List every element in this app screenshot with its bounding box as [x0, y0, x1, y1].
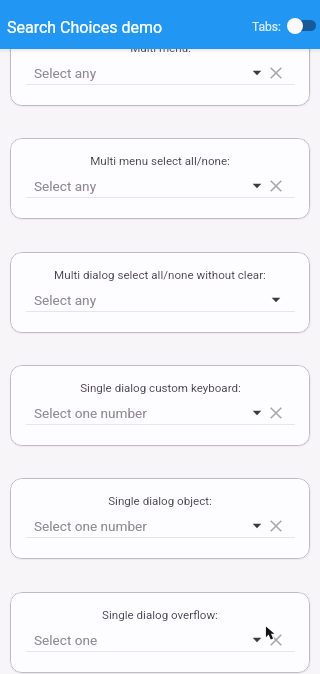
staticText: Select one [34, 632, 98, 648]
button[interactable]: Single dialog object: [10, 478, 310, 559]
staticText: Multi dialog select all/none without cle… [54, 268, 266, 282]
staticText: Single dialog overflow: [102, 608, 218, 622]
button[interactable]: Single dialog custom keyboard: [10, 365, 310, 446]
staticText: Multi menu: [130, 41, 191, 55]
staticText: Select any [34, 65, 97, 81]
button[interactable]: Open dropdown [247, 516, 267, 536]
button[interactable]: Clear [266, 403, 286, 423]
button[interactable]: Single dialog overflow: [10, 592, 310, 673]
button[interactable]: Open dropdown [247, 176, 267, 196]
button[interactable]: Open dropdown [247, 63, 267, 83]
button[interactable]: Clear [266, 516, 286, 536]
staticText: Single dialog custom keyboard: [80, 381, 241, 395]
button[interactable]: Clear [266, 176, 286, 196]
button[interactable]: Open dropdown [266, 290, 286, 310]
button[interactable]: Clear [266, 630, 286, 650]
button[interactable]: Multi menu: [10, 25, 310, 106]
staticText: Tabs: [252, 20, 281, 34]
staticText: Select one number [34, 405, 147, 421]
staticText: Select any [34, 292, 97, 308]
button[interactable]: Multi menu select all/none: [10, 138, 310, 219]
button[interactable]: Multi dialog select all/none without cle… [10, 252, 310, 333]
staticText: Multi menu select all/none: [90, 154, 230, 168]
staticText: Search Choices demo [7, 18, 163, 37]
button[interactable]: Clear [266, 63, 286, 83]
staticText: Select any [34, 178, 97, 194]
button[interactable]: Open dropdown [247, 403, 267, 423]
staticText: Single dialog object: [108, 494, 212, 508]
button[interactable]: Open dropdown [247, 630, 267, 650]
button[interactable]: Tabs toggle [285, 15, 318, 35]
staticText: Select one number [34, 518, 147, 534]
